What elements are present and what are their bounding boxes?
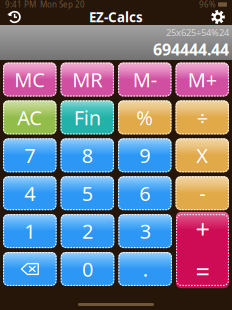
staticText: 96% — [199, 0, 216, 10]
button[interactable]: 0 — [61, 252, 114, 286]
button[interactable]: 9 — [118, 138, 171, 172]
staticText: M- — [133, 66, 157, 93]
staticText: ÷ — [197, 104, 208, 131]
staticText: X — [196, 142, 208, 169]
button[interactable]: AC — [3, 100, 56, 134]
button[interactable]: ÷ — [175, 100, 229, 134]
staticText: 4 — [24, 180, 35, 206]
button[interactable] — [3, 252, 57, 286]
staticText: EZ-Calcs — [89, 8, 143, 26]
button[interactable]: 1 — [3, 214, 57, 248]
button[interactable]: 5 — [60, 176, 114, 210]
button[interactable]: MC — [3, 62, 56, 96]
staticText: 2 — [82, 218, 93, 244]
button[interactable]: X — [175, 138, 229, 172]
staticText: + — [195, 212, 209, 245]
staticText: 7 — [24, 142, 35, 169]
staticText: 694444.44 — [153, 39, 229, 60]
staticText: = — [195, 255, 209, 288]
staticText: 5 — [82, 180, 93, 206]
button[interactable]: % — [118, 100, 171, 134]
staticText: 3 — [140, 218, 151, 244]
staticText: % — [136, 104, 153, 131]
button[interactable]: 4 — [3, 176, 56, 210]
button[interactable]: 3 — [118, 214, 172, 248]
button[interactable]: 6 — [118, 176, 171, 210]
button[interactable]: History — [2, 8, 26, 26]
staticText: MR — [72, 66, 102, 93]
button[interactable]: 2 — [61, 214, 114, 248]
staticText: 25x625÷54%24 — [166, 26, 229, 39]
staticText: M+ — [188, 66, 217, 93]
staticText: 9 — [139, 142, 150, 169]
staticText: 8 — [82, 142, 93, 169]
button[interactable]: Fin — [60, 100, 114, 134]
staticText: 6 — [139, 180, 150, 206]
staticText: Fin — [74, 104, 101, 131]
staticText: 9:41 PM Mon Sep 20 — [5, 0, 85, 10]
button[interactable]: + — [176, 214, 229, 286]
button[interactable]: M+ — [175, 62, 229, 96]
button[interactable]: MR — [60, 62, 114, 96]
staticText: - — [199, 180, 205, 206]
button[interactable]: 8 — [60, 138, 114, 172]
button[interactable]: - — [175, 176, 229, 210]
staticText: AC — [17, 104, 42, 131]
button[interactable]: 7 — [3, 138, 56, 172]
staticText: 1 — [24, 218, 35, 244]
staticText: 0 — [82, 256, 93, 282]
staticText: MC — [14, 66, 45, 93]
staticText: . — [143, 256, 148, 282]
button[interactable]: M- — [118, 62, 171, 96]
button[interactable]: . — [118, 252, 172, 286]
button[interactable]: Settings — [206, 8, 230, 26]
